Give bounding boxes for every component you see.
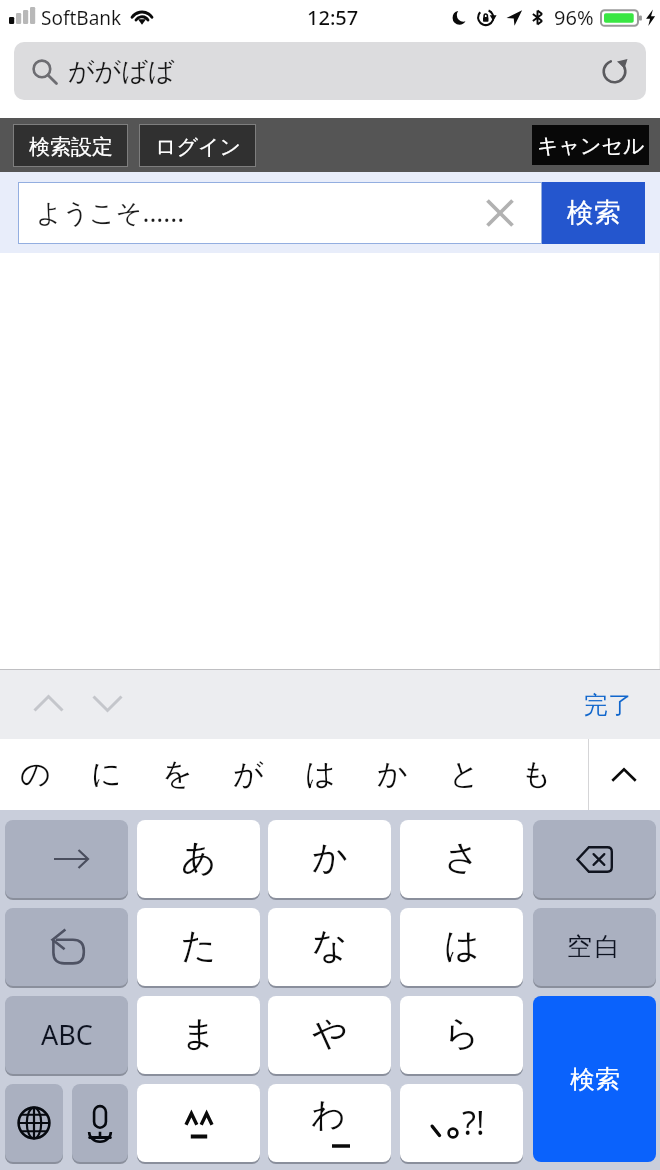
staticText: か [312, 835, 348, 879]
staticText: は [305, 755, 336, 793]
other: Next field [92, 695, 123, 712]
staticText: さ [444, 835, 480, 879]
button[interactable] [137, 1084, 260, 1162]
staticText: な [312, 923, 348, 967]
button[interactable]: 検索設定 [13, 124, 128, 167]
staticText: あ [181, 835, 217, 879]
staticText: や [312, 1011, 348, 1055]
button[interactable]: ががばば [14, 42, 646, 100]
button[interactable] [72, 1084, 128, 1162]
button[interactable]: あ [137, 820, 260, 898]
button[interactable]: キャンセル [532, 125, 649, 165]
button[interactable] [533, 820, 656, 898]
button[interactable]: ま [137, 996, 260, 1074]
staticText: 12:57 [307, 4, 359, 31]
button[interactable]: 完了 [584, 690, 632, 720]
button[interactable]: さ [400, 820, 523, 898]
other: Clear [487, 200, 513, 226]
button[interactable]: ログイン [139, 124, 256, 167]
other: Previous field [33, 695, 64, 712]
button[interactable]: ら [400, 996, 523, 1074]
staticText: か [377, 755, 408, 793]
staticText: ?! [462, 1101, 485, 1145]
button[interactable]: た [137, 908, 260, 986]
staticText: ら [444, 1011, 480, 1055]
staticText: 完了 [584, 690, 632, 720]
staticText: が [233, 755, 264, 793]
staticText: キャンセル [537, 133, 645, 159]
staticText: の [20, 755, 51, 793]
button[interactable]: 検索 [533, 996, 656, 1162]
staticText: ABC [41, 1016, 93, 1053]
button[interactable]: Expand suggestions [589, 739, 660, 810]
button[interactable]: は [284, 739, 356, 810]
button[interactable]: も [500, 739, 572, 810]
button[interactable]: な [268, 908, 391, 986]
staticText: ようこそ...... [36, 194, 185, 230]
button[interactable]: と [428, 739, 500, 810]
other: Reload [601, 58, 628, 85]
staticText: に [91, 755, 122, 793]
staticText: は [444, 923, 480, 967]
button[interactable]: ?! [400, 1084, 523, 1162]
button[interactable]: わ [268, 1084, 391, 1162]
staticText: SoftBank [41, 5, 122, 31]
button[interactable]: や [268, 996, 391, 1074]
staticText: 検索 [570, 1064, 620, 1095]
button[interactable]: を [142, 739, 213, 810]
button[interactable] [5, 820, 128, 898]
button[interactable]: 空白 [533, 908, 656, 986]
staticText: わ [311, 1093, 346, 1136]
staticText: 空白 [567, 931, 623, 962]
staticText: 検索設定 [29, 134, 113, 160]
button[interactable]: か [356, 739, 428, 810]
button[interactable]: か [268, 820, 391, 898]
button[interactable]: が [213, 739, 284, 810]
button[interactable]: ようこそ...... [18, 182, 542, 244]
other: Switch keyboard [5, 1084, 63, 1162]
button[interactable]: ABC [5, 996, 128, 1074]
button[interactable]: の [0, 739, 71, 810]
staticText: を [162, 755, 193, 793]
button[interactable]: は [400, 908, 523, 986]
staticText: た [181, 923, 217, 967]
staticText: 検索 [567, 196, 621, 230]
button[interactable] [5, 1084, 63, 1162]
other: Dictation [72, 1084, 128, 1162]
staticText: ま [181, 1011, 217, 1055]
button[interactable]: 検索 [542, 182, 645, 244]
button[interactable] [5, 908, 128, 986]
staticText: 96% [554, 4, 594, 31]
staticText: も [521, 755, 552, 793]
staticText: ログイン [155, 134, 241, 160]
staticText: ががばば [68, 55, 175, 88]
button[interactable]: に [71, 739, 142, 810]
staticText: と [449, 755, 480, 793]
